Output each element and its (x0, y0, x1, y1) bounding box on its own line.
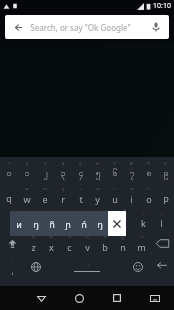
staticText: ᴎ (16, 218, 22, 230)
button[interactable]: Back (11, 20, 25, 34)
staticText: 2 (26, 161, 29, 166)
button[interactable]: က (123, 183, 140, 207)
staticText: y (95, 193, 100, 205)
staticText: ိ (50, 210, 53, 216)
button[interactable]: 1 (0, 157, 18, 183)
button[interactable]: ာ (132, 231, 150, 255)
staticText: 5 (79, 161, 82, 166)
staticText: k (141, 217, 146, 229)
staticText: e (42, 193, 48, 205)
staticText: ń (81, 218, 87, 230)
button[interactable]: 3 (36, 157, 54, 183)
staticText: ၊ (12, 258, 13, 264)
button[interactable]: ñ (44, 211, 60, 236)
button[interactable]: Shift (0, 231, 24, 255)
button[interactable]: ထ (42, 231, 60, 255)
staticText: d (49, 217, 55, 229)
staticText: 0 (164, 161, 167, 166)
staticText: 7 (113, 161, 116, 166)
button[interactable]: ń (76, 211, 92, 236)
button[interactable]: 7 (106, 157, 123, 183)
button[interactable]: ဘ (96, 231, 114, 255)
button[interactable]: ခ (60, 231, 78, 255)
button[interactable]: မ (72, 183, 89, 207)
staticText: ဘ (103, 234, 107, 240)
button[interactable]: ပ (106, 183, 123, 207)
staticText: ñ (49, 218, 55, 230)
staticText: g (86, 217, 92, 229)
button[interactable]: 6 (89, 157, 106, 183)
button[interactable]: ါ (80, 207, 98, 231)
button[interactable]: 9 (140, 157, 157, 183)
staticText: 9 (147, 161, 150, 166)
staticText: 3 (44, 161, 47, 166)
button[interactable]: င (140, 183, 157, 207)
button[interactable]: ŋ (27, 211, 44, 236)
button[interactable]: ɲ (60, 211, 76, 236)
staticText: q (6, 192, 12, 204)
staticText: ့ (106, 210, 109, 216)
button[interactable]: န (54, 183, 72, 207)
button[interactable]: Back (22, 286, 60, 310)
button[interactable]: Voice search (149, 20, 163, 34)
button[interactable]: 4 (54, 157, 72, 183)
button[interactable]: အ (89, 183, 106, 207)
staticText: လ (85, 234, 89, 240)
staticText: l (160, 217, 163, 229)
button[interactable]: ေ (4, 207, 23, 231)
button[interactable]: Recents (98, 286, 136, 310)
staticText: Search, or say "Ok Google" (30, 22, 131, 33)
button[interactable]: 2 (18, 157, 36, 183)
button[interactable]: ည (114, 231, 132, 255)
button[interactable]: ူ (152, 207, 170, 231)
button[interactable]: p (157, 183, 174, 207)
staticText: ြ (123, 210, 127, 216)
staticText: r (61, 193, 65, 205)
button[interactable]: ့ (98, 207, 116, 231)
staticText: 1 (8, 161, 11, 166)
button[interactable]: လ (78, 231, 96, 255)
button[interactable]: ု (134, 207, 152, 231)
button[interactable]: ŋ (92, 211, 108, 236)
button[interactable]: Backspace (150, 231, 174, 255)
staticText: ၈ (146, 167, 152, 180)
button[interactable]: ် (61, 207, 80, 231)
button[interactable]: ᴎ (10, 211, 27, 236)
button[interactable]: Emoji (126, 255, 149, 279)
staticText: ူ (160, 210, 163, 216)
staticText: အ (96, 186, 100, 192)
button[interactable]: 8 (123, 157, 140, 183)
staticText: ၇ (129, 167, 135, 180)
staticText: c (67, 241, 72, 253)
staticText: x (49, 241, 54, 253)
staticText: ၁ (24, 167, 30, 180)
button[interactable]: ျ (23, 207, 42, 231)
button[interactable]: Close (108, 211, 126, 236)
button[interactable]: ၊ (0, 255, 24, 279)
staticText: ၀ (6, 167, 12, 180)
staticText: m (137, 241, 146, 253)
staticText: ါ (87, 210, 91, 216)
button[interactable]: q (0, 183, 18, 207)
button[interactable]: Back (5, 15, 169, 39)
staticText: w (23, 193, 31, 205)
button[interactable]: ဆ (18, 183, 36, 207)
button[interactable]: Home (60, 286, 98, 310)
staticText: ည (121, 234, 125, 240)
button[interactable]: Change language (24, 255, 48, 279)
staticText: က (130, 186, 134, 192)
button[interactable]: Enter (149, 255, 174, 279)
button[interactable]: တ (36, 183, 54, 207)
button[interactable]: 5 (72, 157, 89, 183)
staticText: ဆ (25, 186, 29, 192)
staticText: 10:10 (153, 1, 171, 11)
button[interactable]: ဇ (24, 231, 42, 255)
staticText: ထ (49, 234, 53, 240)
button[interactable]: Space (48, 255, 126, 279)
button[interactable]: Hide keyboard (136, 286, 174, 310)
staticText: p (163, 192, 169, 204)
staticText: ပ (113, 186, 116, 192)
button[interactable]: ိ (42, 207, 61, 231)
button[interactable]: ြ (116, 207, 134, 231)
button[interactable]: 0 (157, 157, 174, 183)
